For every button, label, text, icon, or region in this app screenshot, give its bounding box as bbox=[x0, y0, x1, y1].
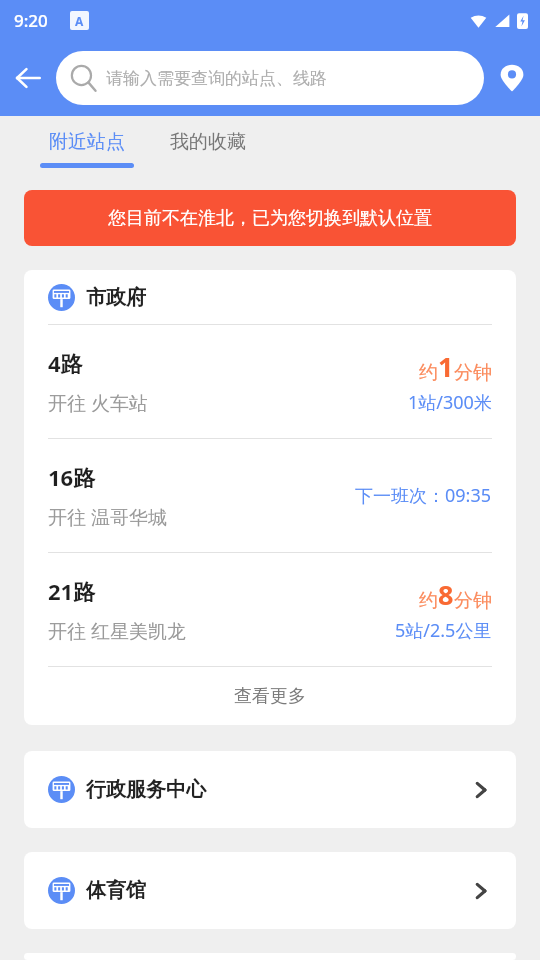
staticText: 您目前不在淮北，已为您切换到默认位置 bbox=[108, 207, 432, 230]
staticText: 开往 温哥华城 bbox=[48, 504, 167, 530]
staticText: 1 bbox=[438, 348, 454, 385]
staticText: 21路 bbox=[48, 576, 96, 606]
staticText: 16路 bbox=[48, 462, 96, 492]
staticText: A bbox=[75, 13, 84, 29]
staticText: 1站/300米 bbox=[408, 390, 492, 415]
button[interactable]: 市政府 bbox=[24, 270, 516, 324]
button[interactable]: 16路 bbox=[24, 439, 516, 552]
staticText: 市政府 bbox=[86, 285, 146, 310]
button[interactable]: Back bbox=[0, 50, 56, 106]
button[interactable]: 附近站点 bbox=[40, 130, 134, 168]
staticText: 约 bbox=[419, 361, 438, 385]
staticText: 8 bbox=[438, 576, 454, 613]
staticText: 5站/2.5公里 bbox=[395, 618, 492, 643]
button[interactable]: 体育馆 bbox=[24, 852, 516, 929]
staticText: 体育馆 bbox=[86, 878, 146, 903]
staticText: 下一班次：09:35 bbox=[355, 483, 492, 508]
staticText: 开往 红星美凯龙 bbox=[48, 618, 186, 644]
staticText: 我的收藏 bbox=[170, 130, 246, 154]
staticText: 附近站点 bbox=[49, 130, 125, 154]
button[interactable]: 请输入需要查询的站点、线路 bbox=[56, 51, 484, 105]
button[interactable]: 查看更多 bbox=[24, 667, 516, 725]
button[interactable]: 4路 bbox=[24, 325, 516, 438]
staticText: 分钟 bbox=[454, 589, 492, 613]
staticText: 查看更多 bbox=[234, 685, 306, 708]
staticText: 开往 火车站 bbox=[48, 390, 148, 416]
staticText: 9:20 bbox=[14, 9, 48, 32]
button[interactable]: 21路 bbox=[24, 553, 516, 666]
staticText: 分钟 bbox=[454, 361, 492, 385]
button[interactable]: Location bbox=[484, 40, 540, 116]
staticText: 请输入需要查询的站点、线路 bbox=[106, 68, 327, 89]
staticText: 行政服务中心 bbox=[86, 777, 206, 802]
staticText: 4路 bbox=[48, 348, 83, 378]
button[interactable]: 您目前不在淮北，已为您切换到默认位置 bbox=[24, 190, 516, 246]
button[interactable]: 我的收藏 bbox=[170, 130, 246, 154]
button[interactable]: 行政服务中心 bbox=[24, 751, 516, 828]
staticText: 约 bbox=[419, 589, 438, 613]
